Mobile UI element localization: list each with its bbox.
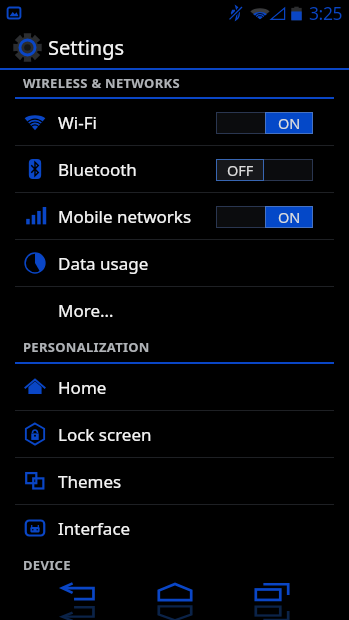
button[interactable]: Bluetooth bbox=[0, 146, 349, 192]
staticText: WIRELESS & NETWORKS bbox=[23, 74, 180, 92]
staticText: Interface bbox=[58, 517, 131, 540]
staticText: DEVICE bbox=[23, 556, 71, 574]
staticText: PERSONALIZATION bbox=[23, 338, 150, 356]
button[interactable]: Recent apps bbox=[223, 575, 320, 620]
button[interactable]: Mobile networks bbox=[0, 193, 349, 239]
button[interactable]: Lock screen bbox=[0, 411, 349, 457]
staticText: Bluetooth bbox=[58, 158, 137, 181]
button[interactable]: More… bbox=[0, 287, 349, 333]
staticText: OFF bbox=[227, 160, 254, 180]
staticText: Home bbox=[58, 376, 107, 399]
staticText: Lock screen bbox=[58, 423, 152, 446]
staticText: ON bbox=[278, 113, 301, 133]
button[interactable]: Interface bbox=[0, 505, 349, 551]
staticText: Settings bbox=[48, 34, 125, 61]
staticText: 3:25 bbox=[309, 1, 343, 25]
button[interactable]: Back bbox=[29, 575, 126, 620]
button[interactable]: Wi-Fi bbox=[0, 99, 349, 145]
staticText: Themes bbox=[58, 470, 122, 493]
staticText: Data usage bbox=[58, 252, 149, 275]
staticText: Mobile networks bbox=[58, 205, 192, 228]
button[interactable]: Themes bbox=[0, 458, 349, 504]
button[interactable]: Home bbox=[126, 575, 223, 620]
button[interactable]: ON bbox=[216, 112, 313, 134]
staticText: Wi-Fi bbox=[58, 111, 97, 134]
staticText: ON bbox=[278, 207, 301, 227]
staticText: More… bbox=[58, 299, 114, 322]
button[interactable]: ON bbox=[216, 206, 313, 228]
button[interactable]: Data usage bbox=[0, 240, 349, 286]
button[interactable]: OFF bbox=[216, 159, 313, 181]
button[interactable]: Home bbox=[0, 364, 349, 410]
